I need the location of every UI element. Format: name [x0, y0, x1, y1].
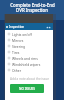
button[interactable]: Windshield wipers: [5, 61, 53, 67]
button[interactable]: NO ISSUES: [10, 84, 44, 93]
staticText: Wheels and rims: [12, 56, 38, 60]
staticText: DVR Inspection: [16, 7, 48, 13]
button[interactable]: Wheels and rims: [5, 55, 53, 61]
button[interactable]: Tires: [5, 49, 53, 55]
staticText: Steering: [12, 44, 25, 48]
staticText: Complete End-to-End: [10, 2, 55, 8]
button[interactable]: Lights on/off: [5, 31, 53, 37]
button[interactable]: Other: [5, 67, 53, 73]
button[interactable]: Steering: [5, 43, 53, 49]
button[interactable]: More options: [45, 24, 51, 30]
staticText: Lights on/off: [12, 32, 32, 36]
staticText: Inspection: [9, 25, 25, 29]
staticText: Tires: [12, 50, 20, 54]
staticText: Mirrors: [12, 38, 24, 42]
button[interactable]: Mirrors: [5, 37, 53, 43]
staticText: Other: [12, 68, 22, 72]
staticText: Add a note about the issue: [10, 77, 49, 81]
staticText: NO ISSUES: [19, 87, 35, 91]
staticText: Windshield wipers: [12, 62, 41, 66]
